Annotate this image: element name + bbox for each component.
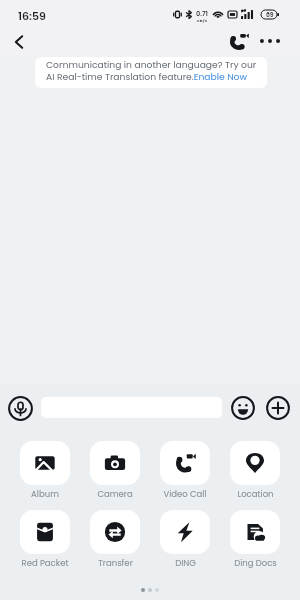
button[interactable]: More options [266,396,290,420]
button[interactable]: DING [160,510,210,569]
staticText: KB/S [197,18,208,24]
button[interactable]: Camera [90,441,140,500]
staticText: Ding Docs [234,557,277,569]
button[interactable]: Video Call [160,441,210,500]
button[interactable]: Voice message [8,396,33,421]
staticText: 69 [266,11,274,19]
button[interactable]: More options [258,29,282,53]
staticText: Transfer [98,557,133,569]
staticText: Camera [97,488,133,500]
staticText: Red Packet [21,557,69,569]
button[interactable]: Ding Docs [230,510,280,569]
staticText: Album [31,488,59,500]
staticText: 0.71 [196,9,208,18]
staticText: DING [175,557,196,569]
button[interactable]: Transfer [90,510,140,569]
button[interactable]: Video call [226,29,250,53]
button[interactable]: Emoji [231,396,255,420]
staticText: Video Call [163,488,207,500]
staticText: Location [237,488,274,500]
staticText: 16:59 [18,8,46,23]
button[interactable]: Back [5,28,33,56]
staticText: Communicating in another language? Try o… [46,58,257,83]
button[interactable]: Communicating in another language? Try o… [35,57,267,88]
button[interactable]: Album [20,441,70,500]
button[interactable]: Location [230,441,280,500]
button[interactable]: Red Packet [20,510,70,569]
